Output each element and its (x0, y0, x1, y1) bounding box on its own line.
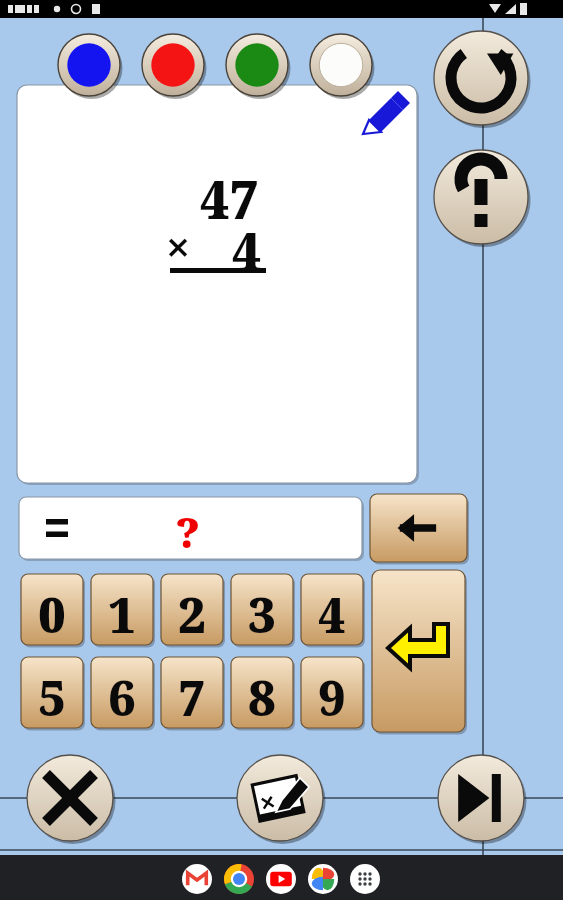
staticText: 9 (318, 665, 346, 727)
button[interactable]: 9 (301, 657, 363, 728)
button[interactable]: Red colour (142, 34, 204, 96)
staticText: 4 (232, 215, 262, 286)
staticText: 7 (178, 665, 206, 727)
button[interactable]: Enter (372, 570, 465, 732)
staticText: 3 (248, 582, 276, 644)
button[interactable]: Next (438, 755, 524, 841)
button[interactable]: Scratch pad (237, 755, 323, 841)
button[interactable]: White colour (310, 34, 372, 96)
button[interactable]: 0 (21, 574, 83, 645)
staticText: × (165, 215, 192, 278)
button[interactable]: Blue colour (58, 34, 120, 96)
button[interactable]: Help (434, 150, 528, 244)
staticText: 1 (108, 582, 136, 644)
button[interactable]: Green colour (226, 34, 288, 96)
button[interactable]: Backspace (370, 494, 467, 562)
staticText: ? (176, 503, 200, 560)
staticText: 6 (108, 665, 136, 727)
staticText: 5 (38, 665, 66, 727)
button[interactable]: 2 (161, 574, 223, 645)
button[interactable]: Close (27, 755, 113, 841)
button[interactable]: 8 (231, 657, 293, 728)
staticText: 4 (318, 582, 346, 644)
button[interactable]: 3 (231, 574, 293, 645)
button[interactable]: Draw (359, 94, 407, 142)
button[interactable]: 5 (21, 657, 83, 728)
button[interactable]: 4 (301, 574, 363, 645)
button[interactable]: 1 (91, 574, 153, 645)
button[interactable]: Refresh (434, 31, 528, 125)
staticText: 47 (200, 163, 260, 234)
staticText: 0 (38, 582, 66, 644)
button[interactable]: 7 (161, 657, 223, 728)
staticText: 8 (248, 665, 276, 727)
button[interactable]: 6 (91, 657, 153, 728)
button[interactable]: Answer field (19, 497, 362, 559)
staticText: 2 (178, 582, 206, 644)
